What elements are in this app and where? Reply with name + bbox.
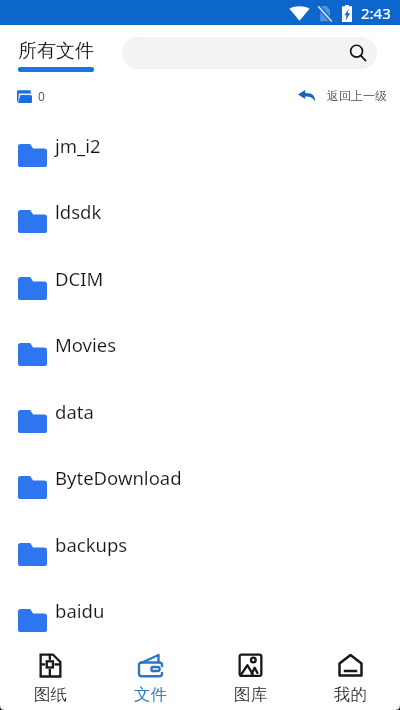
button[interactable]: DCIM xyxy=(0,277,400,344)
staticText: 所有文件 xyxy=(18,39,94,63)
staticText: backups xyxy=(55,532,128,557)
button[interactable]: backups xyxy=(0,543,400,610)
staticText: 文件 xyxy=(134,684,167,705)
button[interactable]: Search xyxy=(122,37,377,69)
button[interactable]: ByteDownload xyxy=(0,476,400,543)
button[interactable]: ldsdk xyxy=(0,210,400,277)
staticText: baidu xyxy=(55,598,105,623)
button[interactable]: 返回上一级 xyxy=(298,88,400,103)
staticText: 返回上一级 xyxy=(327,88,387,103)
button[interactable]: data xyxy=(0,410,400,477)
staticText: 0 xyxy=(38,88,45,104)
staticText: 我的 xyxy=(334,684,367,705)
staticText: ldsdk xyxy=(55,199,102,224)
button[interactable]: 图库 xyxy=(200,647,300,705)
staticText: Movies xyxy=(55,332,117,357)
staticText: jm_i2 xyxy=(55,133,101,158)
staticText: 2:43 xyxy=(361,3,391,23)
staticText: data xyxy=(55,399,94,424)
button[interactable]: Movies xyxy=(0,343,400,410)
button[interactable]: jm_i2 xyxy=(0,144,400,211)
staticText: 图纸 xyxy=(34,684,67,705)
staticText: ByteDownload xyxy=(55,465,182,490)
staticText: DCIM xyxy=(55,266,104,291)
button[interactable]: 0 xyxy=(0,88,45,104)
button[interactable]: baidu xyxy=(0,609,400,676)
button[interactable]: 图纸 xyxy=(0,647,100,705)
button[interactable]: 所有文件 xyxy=(18,39,94,72)
staticText: 图库 xyxy=(234,684,267,705)
button[interactable]: 我的 xyxy=(300,647,400,705)
button[interactable]: 文件 xyxy=(100,647,200,705)
